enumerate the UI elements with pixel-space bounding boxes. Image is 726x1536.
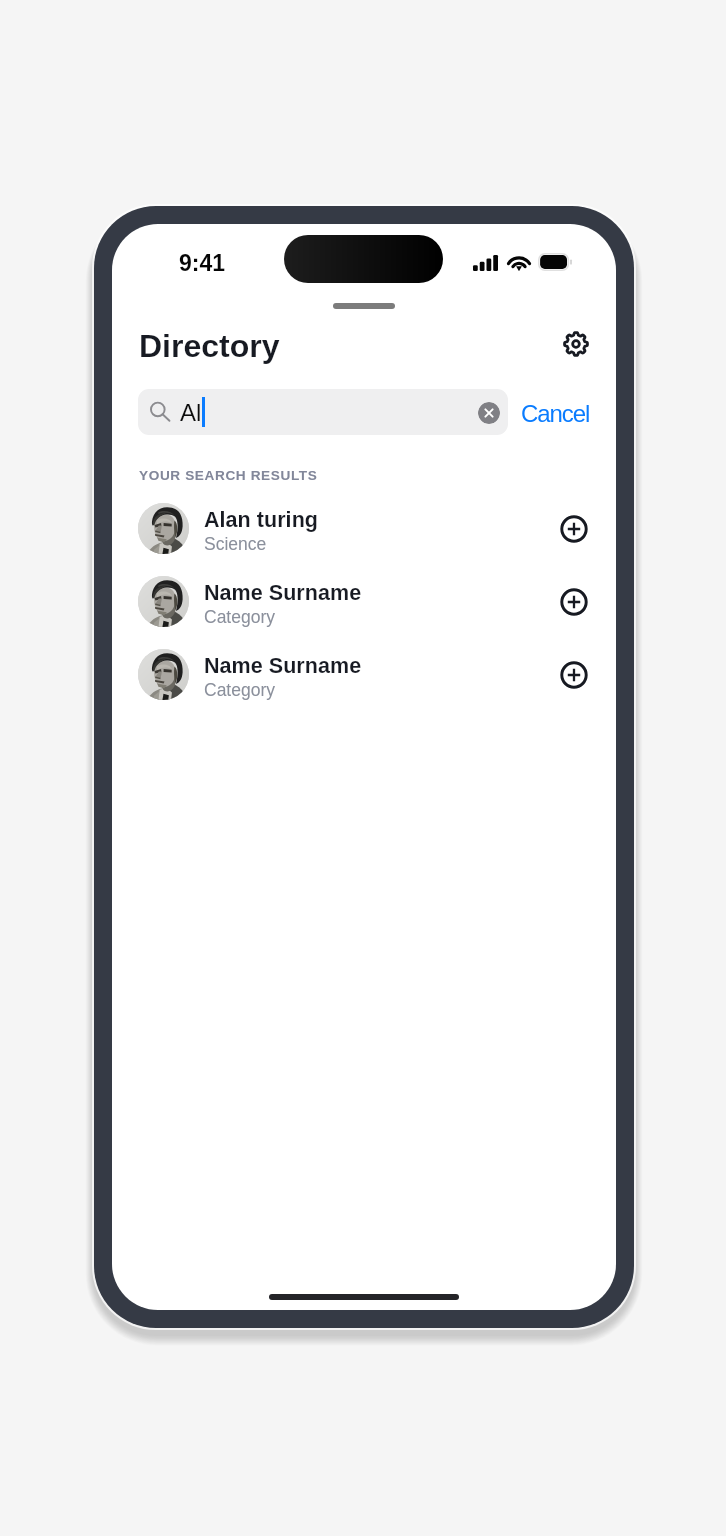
button[interactable]: Clear text xyxy=(478,402,500,424)
button[interactable]: Name Surname xyxy=(112,565,616,638)
staticText: Alan turing xyxy=(204,508,319,532)
staticText: Name Surname xyxy=(204,581,362,605)
staticText: YOUR SEARCH RESULTS xyxy=(139,468,318,483)
button[interactable]: Directory xyxy=(130,324,289,368)
button[interactable]: Add Name Surname xyxy=(554,582,594,622)
button[interactable]: Alan turing xyxy=(112,492,616,565)
button[interactable]: Cancel xyxy=(515,394,596,433)
staticText: Directory xyxy=(139,328,280,364)
staticText: Science xyxy=(204,534,267,554)
button[interactable]: Name Surname xyxy=(112,638,616,711)
button[interactable]: Search directory xyxy=(138,389,508,435)
staticText: Name Surname xyxy=(204,654,362,678)
staticText: Cancel xyxy=(521,400,590,427)
staticText: Category xyxy=(204,680,276,700)
staticText: Category xyxy=(204,607,276,627)
button[interactable]: Add Name Surname xyxy=(554,655,594,695)
button[interactable]: Add Alan turing xyxy=(554,509,594,549)
button[interactable]: Settings xyxy=(556,325,598,367)
staticText: Al xyxy=(180,399,202,426)
staticText: 9:41 xyxy=(179,250,226,276)
